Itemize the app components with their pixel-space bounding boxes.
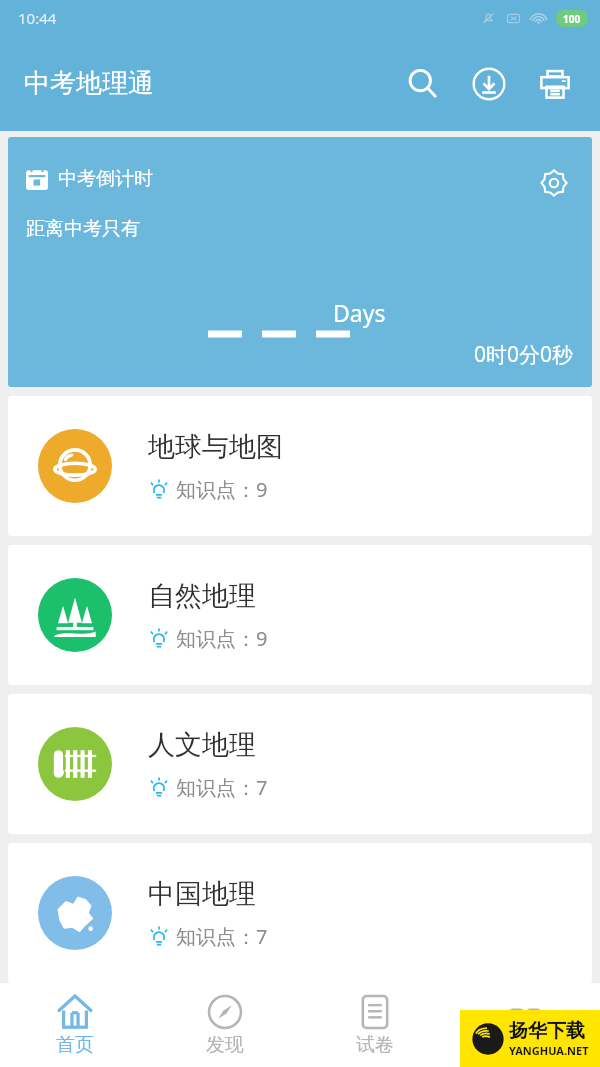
staticText: 中国地理 xyxy=(148,877,256,911)
staticText: 扬华下载 xyxy=(509,1019,585,1043)
button[interactable]: 人文地理 xyxy=(8,694,592,834)
button[interactable]: 试卷 xyxy=(300,983,450,1067)
button[interactable]: 地球与地图 xyxy=(8,396,592,536)
staticText: 自然地理 xyxy=(148,579,256,613)
staticText: 10:44 xyxy=(18,8,57,28)
staticText: 中考倒计时 xyxy=(58,167,153,191)
staticText: 距离中考只有 xyxy=(26,217,140,241)
button[interactable]: 首页 xyxy=(0,983,150,1067)
staticText: 首页 xyxy=(56,1033,94,1057)
button[interactable]: Print xyxy=(526,55,584,113)
staticText: 知识点：7 xyxy=(176,774,268,801)
button[interactable]: 自然地理 xyxy=(8,545,592,685)
staticText: 发现 xyxy=(206,1033,244,1057)
button[interactable]: Download xyxy=(460,55,518,113)
button[interactable]: More xyxy=(450,983,600,1067)
button[interactable]: 发现 xyxy=(150,983,300,1067)
staticText: 100 xyxy=(563,12,581,26)
staticText: 地球与地图 xyxy=(148,430,283,464)
staticText: 中考地理通 xyxy=(24,67,154,100)
staticText: 知识点：7 xyxy=(176,923,268,950)
staticText: Days xyxy=(333,297,386,328)
staticText: 0时0分0秒 xyxy=(474,340,574,369)
staticText: 人文地理 xyxy=(148,728,256,762)
staticText: 试卷 xyxy=(356,1033,394,1057)
button[interactable]: Search xyxy=(394,55,452,113)
button[interactable]: Settings xyxy=(532,161,576,205)
button[interactable]: 中考倒计时 xyxy=(8,137,592,387)
staticText: 知识点：9 xyxy=(176,625,268,652)
button[interactable]: 中国地理 xyxy=(8,843,592,983)
staticText: YANGHUA.NET xyxy=(509,1043,589,1058)
staticText: 知识点：9 xyxy=(176,476,268,503)
